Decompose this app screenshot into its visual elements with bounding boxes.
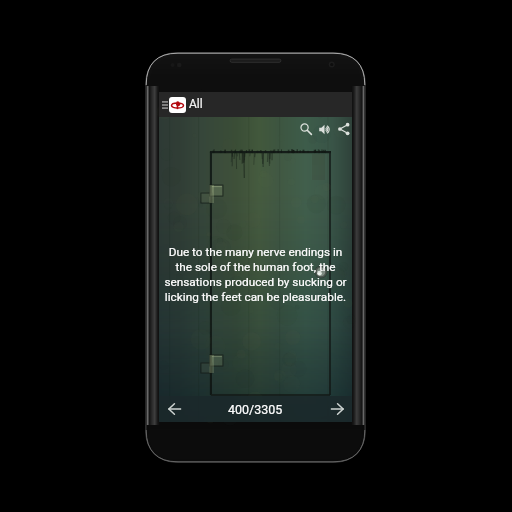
button[interactable]: Previous fact: [165, 396, 184, 422]
button[interactable]: Search: [300, 118, 312, 140]
button[interactable]: Next fact: [327, 396, 346, 422]
button[interactable]: Open navigation menu: [160, 92, 169, 117]
button[interactable]: Share: [337, 118, 350, 140]
button[interactable]: Read aloud: [318, 118, 331, 140]
staticText: 400/3305: [228, 402, 283, 417]
button[interactable]: App logo: [169, 97, 186, 113]
staticText: All: [189, 97, 203, 111]
staticText: Due to the many nerve endings in the sol…: [161, 245, 350, 303]
